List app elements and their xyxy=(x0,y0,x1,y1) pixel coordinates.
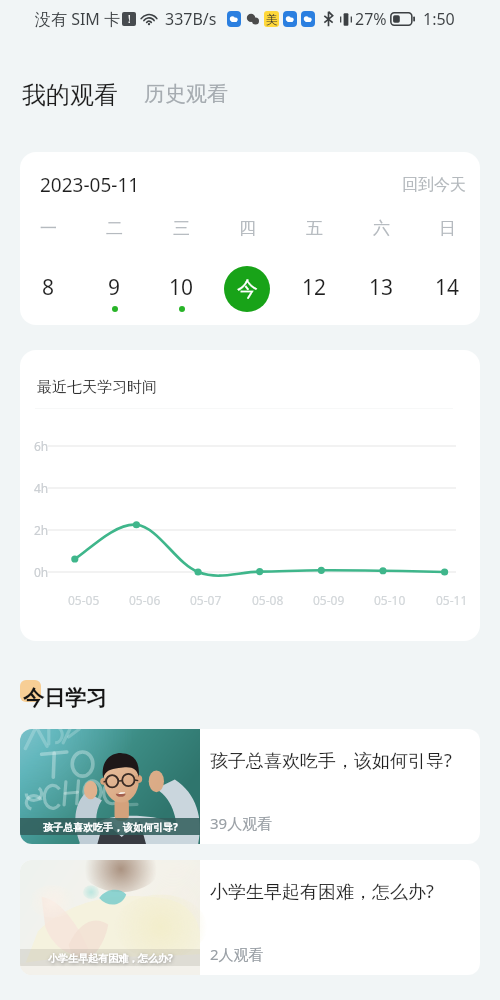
staticText: 六 xyxy=(373,218,390,238)
staticText: 四 xyxy=(239,218,256,238)
button[interactable]: 10 xyxy=(148,272,214,325)
staticText: 4h xyxy=(34,480,49,496)
staticText: 05-07 xyxy=(190,592,222,608)
staticText: 美 xyxy=(266,12,278,27)
staticText: 12 xyxy=(302,273,327,302)
staticText: 05-10 xyxy=(374,592,406,608)
staticText: 日 xyxy=(439,218,456,238)
staticText: 39人观看 xyxy=(210,813,273,833)
button[interactable]: 小学生早起有困难，怎么办? xyxy=(20,860,480,975)
staticText: 05-11 xyxy=(436,592,468,608)
button[interactable]: 回到今天 xyxy=(402,175,466,195)
staticText: 历史观看 xyxy=(144,81,228,107)
staticText: 9 xyxy=(108,273,121,302)
staticText: 27% xyxy=(355,8,387,30)
staticText: 今日学习 xyxy=(23,685,107,711)
button[interactable]: 13 xyxy=(348,272,414,325)
button[interactable]: 14 xyxy=(414,272,480,325)
staticText: 一 xyxy=(40,218,57,238)
staticText: 2人观看 xyxy=(210,944,264,964)
staticText: 6h xyxy=(34,438,49,454)
button[interactable]: 今 xyxy=(214,272,280,325)
staticText: 五 xyxy=(306,218,323,238)
staticText: 05-08 xyxy=(252,592,284,608)
staticText: 三 xyxy=(173,218,190,238)
staticText: 2h xyxy=(34,522,49,538)
staticText: 13 xyxy=(369,273,394,302)
staticText: 我的观看 xyxy=(22,80,118,110)
staticText: 8 xyxy=(42,273,55,302)
staticText: 05-09 xyxy=(313,592,345,608)
staticText: 没有 SIM 卡 xyxy=(35,8,121,30)
button[interactable]: 12 xyxy=(281,272,347,325)
staticText: 05-06 xyxy=(129,592,161,608)
button[interactable]: 8 xyxy=(20,272,81,325)
staticText: 2023-05-11 xyxy=(40,172,140,198)
staticText: 337B/s xyxy=(165,8,217,30)
staticText: 小学生早起有困难，怎么办? xyxy=(210,879,434,904)
staticText: 0h xyxy=(34,564,49,580)
staticText: 二 xyxy=(106,218,123,238)
staticText: 05-05 xyxy=(68,592,100,608)
staticText: 孩子总喜欢吃手，该如何引导? xyxy=(43,820,178,834)
staticText: ! xyxy=(128,12,131,26)
staticText: 10 xyxy=(169,273,194,302)
staticText: 最近七天学习时间 xyxy=(37,378,157,397)
button[interactable]: 9 xyxy=(81,272,147,325)
staticText: 小学生早起有困难，怎么办? xyxy=(48,951,173,965)
staticText: 孩子总喜欢吃手，该如何引导? xyxy=(210,748,452,773)
button[interactable]: 历史观看 xyxy=(143,75,229,113)
button[interactable]: 孩子总喜欢吃手，该如何引导? xyxy=(20,729,480,844)
staticText: 今 xyxy=(237,276,258,302)
button[interactable]: 我的观看 xyxy=(21,75,119,115)
staticText: 14 xyxy=(435,273,460,302)
staticText: 1:50 xyxy=(423,8,455,30)
staticText: 回到今天 xyxy=(402,175,466,195)
